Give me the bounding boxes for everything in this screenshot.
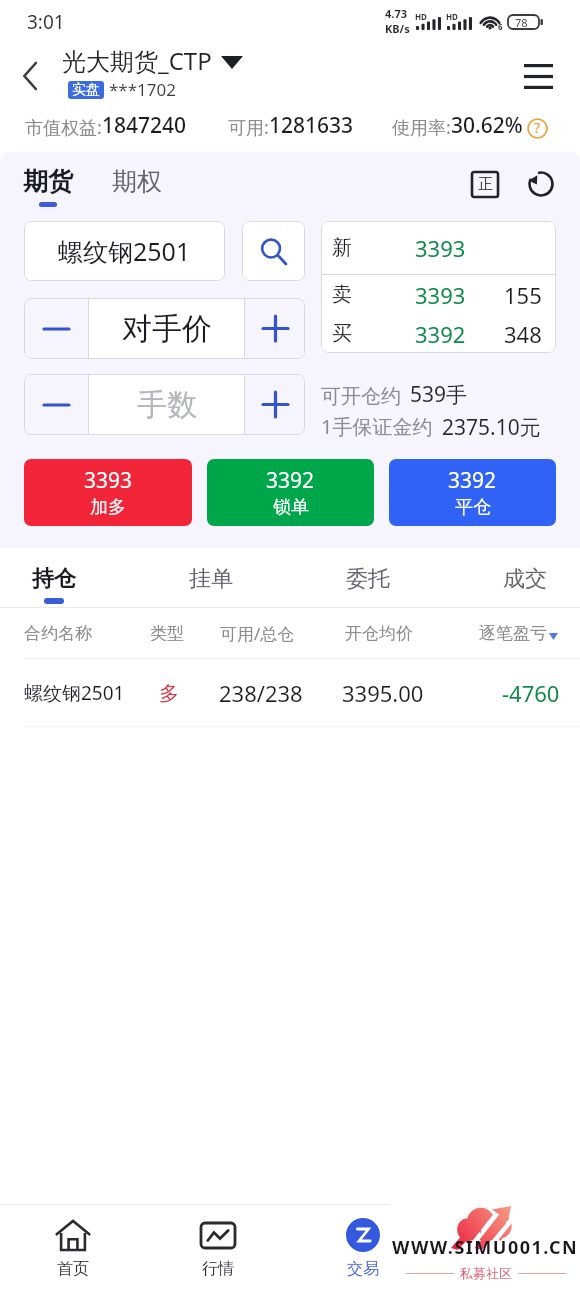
staticText: ***1702 xyxy=(109,78,176,101)
button[interactable]: 3392 xyxy=(207,459,374,526)
staticText: 市值权益: xyxy=(25,115,102,140)
staticText: 合约名称 xyxy=(24,623,92,644)
button[interactable]: Increase xyxy=(245,298,305,359)
button[interactable]: 交易 xyxy=(290,1205,435,1289)
button[interactable]: 螺纹钢2501 xyxy=(0,659,580,727)
button[interactable]: 挂单 xyxy=(171,548,251,604)
staticText: 买 xyxy=(332,321,352,346)
staticText: 卖 xyxy=(332,282,352,307)
staticText: 使用率: xyxy=(392,115,451,140)
staticText: 3392 xyxy=(415,319,466,349)
button[interactable]: 期权 xyxy=(106,166,168,197)
staticText: HD xyxy=(415,11,427,22)
staticText: -4760 xyxy=(502,678,560,708)
staticText: 3392 xyxy=(266,466,315,495)
button[interactable]: 委托 xyxy=(328,548,408,604)
button[interactable]: 成交 xyxy=(485,548,565,604)
button[interactable]: Decrease xyxy=(24,298,88,359)
staticText: 开仓均价 xyxy=(345,623,413,644)
button[interactable]: 对手价 xyxy=(89,298,244,359)
staticText: 螺纹钢2501 xyxy=(24,680,125,706)
staticText: 可用: xyxy=(228,115,269,140)
staticText: 1手保证金约 xyxy=(321,413,433,437)
button[interactable]: Decrease xyxy=(24,374,88,435)
staticText: 平仓 xyxy=(455,496,491,519)
staticText: 委托 xyxy=(346,565,390,593)
staticText: 实盘 xyxy=(72,81,100,99)
staticText: 3393 xyxy=(84,466,133,495)
staticText: 348 xyxy=(504,319,542,349)
staticText: 加多 xyxy=(90,496,126,519)
staticText: 成交 xyxy=(503,565,547,593)
staticText: 私募社区 xyxy=(460,1265,512,1281)
staticText: 手数 xyxy=(137,386,197,424)
staticText: 3392 xyxy=(448,466,497,495)
staticText: 逐笔盈亏 xyxy=(479,623,547,644)
staticText: 螺纹钢2501 xyxy=(58,234,191,268)
staticText: 期权 xyxy=(112,166,162,197)
button[interactable]: 手数 xyxy=(89,374,244,435)
staticText: 238/238 xyxy=(219,678,303,708)
staticText: 1847240 xyxy=(102,111,187,140)
staticText: 多 xyxy=(159,681,179,706)
staticText: 6 xyxy=(498,21,503,32)
staticText: 3393 xyxy=(415,280,466,310)
button[interactable]: 我的 xyxy=(435,1205,580,1289)
staticText: 类型 xyxy=(150,623,184,644)
staticText: 3395.00 xyxy=(342,678,424,708)
button[interactable]: 行情 xyxy=(145,1205,290,1289)
button[interactable]: Chart mode xyxy=(464,163,506,205)
staticText: 新 xyxy=(332,235,352,260)
staticText: 光大期货_CTP xyxy=(62,44,212,77)
staticText: WWW.SIMU001.CN xyxy=(392,1235,579,1260)
staticText: 挂单 xyxy=(189,565,233,593)
button[interactable]: 螺纹钢2501 xyxy=(24,221,225,281)
staticText: 539手 xyxy=(410,380,468,409)
staticText: 持仓 xyxy=(32,565,76,593)
staticText: 4.73 xyxy=(385,6,407,21)
button[interactable]: Menu xyxy=(514,52,562,100)
staticText: 对手价 xyxy=(122,310,212,348)
staticText: 可开仓约 xyxy=(321,384,401,409)
staticText: ? xyxy=(534,118,541,137)
staticText: 可用/总仓 xyxy=(220,622,295,645)
button[interactable]: Increase xyxy=(245,374,305,435)
staticText: KB/s xyxy=(385,21,410,36)
button[interactable]: 3392 xyxy=(389,459,556,526)
button[interactable]: 持仓 xyxy=(14,548,94,604)
staticText: 3:01 xyxy=(27,9,65,35)
button[interactable]: Refresh xyxy=(520,163,562,205)
staticText: 30.62% xyxy=(451,111,523,140)
staticText: 交易 xyxy=(347,1259,379,1279)
staticText: 1281633 xyxy=(269,111,354,140)
button[interactable]: Back xyxy=(8,54,52,98)
staticText: 行情 xyxy=(202,1259,234,1279)
staticText: 锁单 xyxy=(273,496,309,519)
staticText: 2375.10元 xyxy=(442,413,541,437)
staticText: 我的 xyxy=(492,1259,524,1279)
button[interactable]: Search xyxy=(242,221,305,281)
staticText: 155 xyxy=(504,280,542,310)
staticText: HD xyxy=(446,11,458,22)
button[interactable]: 首页 xyxy=(0,1205,145,1289)
staticText: 78 xyxy=(515,15,528,29)
button[interactable]: 3393 xyxy=(24,459,192,526)
button[interactable]: 期货 xyxy=(17,166,79,207)
staticText: 期货 xyxy=(23,166,73,197)
staticText: 首页 xyxy=(57,1259,89,1279)
staticText: 正 xyxy=(478,175,493,194)
staticText: 3393 xyxy=(415,233,466,263)
